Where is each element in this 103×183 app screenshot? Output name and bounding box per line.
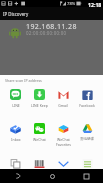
button[interactable]: Back [0, 169, 35, 183]
staticText: WeChat Favorites [56, 137, 71, 147]
button[interactable] [51, 158, 75, 169]
staticText: IP Discovery [3, 11, 29, 17]
staticText: LINE Keep [31, 103, 48, 108]
button[interactable]: 雲端硬碟 [75, 123, 99, 141]
staticText: 雲端硬碟 [80, 137, 94, 141]
button[interactable]: LINE [4, 89, 27, 108]
staticText: Share scan IP address [5, 78, 42, 83]
button[interactable]: LINE Keep [27, 89, 51, 108]
staticText: 12:18 [88, 1, 102, 8]
staticText: LINE [12, 103, 20, 108]
button[interactable] [75, 158, 99, 169]
staticText: 192.168.11.28 [26, 22, 77, 32]
staticText: Inbox [11, 137, 21, 142]
button[interactable]: Home [35, 169, 69, 183]
staticText: 78% [67, 1, 76, 7]
button[interactable] [27, 158, 51, 169]
staticText: Gmail [58, 103, 68, 108]
staticText: Facebook [79, 103, 95, 108]
button[interactable]: Facebook [75, 89, 99, 108]
button[interactable]: Inbox [4, 123, 27, 142]
button[interactable]: WeChat [27, 123, 51, 142]
button[interactable]: Recent apps [69, 169, 103, 183]
button[interactable]: Gmail [51, 89, 75, 108]
button[interactable]: WeChat Favorites [51, 123, 75, 147]
staticText: WeChat [33, 137, 46, 142]
button[interactable] [4, 158, 27, 169]
staticText: 02:00:00:00:00:00 [26, 30, 67, 36]
